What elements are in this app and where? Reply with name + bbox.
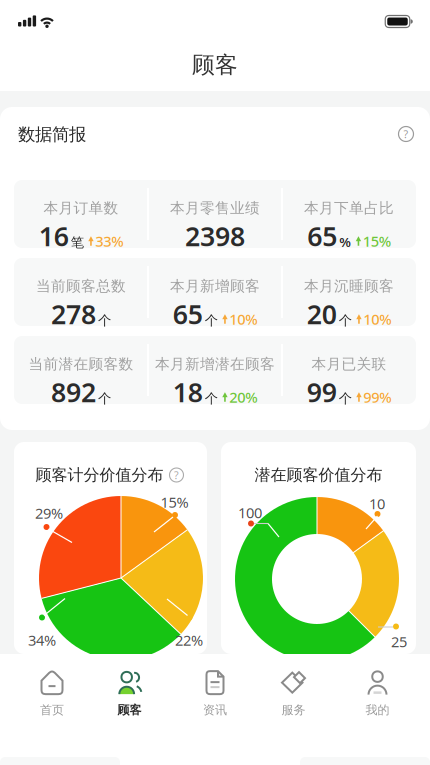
staticText: 99 — [307, 374, 337, 410]
staticText: 个 — [205, 390, 218, 407]
staticText: 本月订单数 — [43, 199, 118, 217]
staticText: 本月下单占比 — [304, 199, 394, 217]
staticText: 99% — [363, 387, 391, 407]
staticText: 16 — [39, 218, 69, 254]
staticText: 100 — [238, 503, 262, 522]
button[interactable]: 资讯 — [177, 663, 253, 723]
staticText: 个 — [205, 312, 218, 329]
staticText: 个 — [339, 312, 352, 329]
staticText: 数据简报 — [18, 124, 86, 145]
button[interactable]: 顾客计分价值分布说明 — [168, 467, 184, 483]
staticText: 10 — [369, 494, 385, 513]
staticText: 本月新增顾客 — [170, 277, 260, 295]
staticText: 22% — [175, 630, 203, 650]
staticText: ? — [403, 127, 408, 141]
staticText: 33% — [95, 231, 123, 251]
staticText: 顾客计分价值分布 — [35, 465, 163, 485]
staticText: 34% — [28, 630, 56, 650]
staticText: 2398 — [185, 218, 245, 254]
staticText: 10% — [363, 309, 391, 329]
button[interactable]: 数据简报说明 — [394, 122, 418, 146]
staticText: 个 — [98, 390, 111, 407]
staticText: 当前潜在顾客数 — [28, 355, 133, 373]
staticText: 个 — [98, 312, 111, 329]
button[interactable]: 首页 — [14, 663, 90, 723]
staticText: 个 — [339, 390, 352, 407]
staticText: 服务 — [281, 703, 305, 717]
staticText: 25 — [391, 632, 407, 651]
staticText: 278 — [51, 296, 96, 332]
staticText: 10% — [229, 309, 257, 329]
staticText: 本月零售业绩 — [170, 199, 260, 217]
staticText: 本月已关联 — [311, 355, 386, 373]
staticText: 18 — [173, 374, 203, 410]
staticText: 笔 — [71, 234, 84, 251]
staticText: 29% — [35, 503, 63, 523]
staticText: 我的 — [365, 703, 389, 717]
staticText: 本月新增潜在顾客 — [155, 355, 275, 373]
button[interactable]: 服务 — [255, 663, 331, 723]
button[interactable]: 我的 — [339, 663, 415, 723]
staticText: ? — [174, 468, 179, 482]
staticText: 15% — [160, 492, 188, 512]
staticText: % — [339, 233, 351, 251]
staticText: 首页 — [40, 703, 64, 717]
staticText: 顾客 — [192, 51, 238, 79]
staticText: 顾客 — [117, 703, 141, 717]
staticText: 本月沉睡顾客 — [304, 277, 394, 295]
staticText: 当前顾客总数 — [36, 277, 126, 295]
staticText: 65 — [173, 296, 203, 332]
staticText: 892 — [51, 374, 96, 410]
staticText: 15% — [363, 231, 391, 251]
button[interactable]: 顾客 — [91, 663, 167, 723]
staticText: 20 — [307, 296, 337, 332]
staticText: 20% — [229, 387, 257, 407]
staticText: 65 — [307, 218, 337, 254]
staticText: 资讯 — [203, 703, 227, 717]
staticText: 潜在顾客价值分布 — [254, 465, 382, 485]
